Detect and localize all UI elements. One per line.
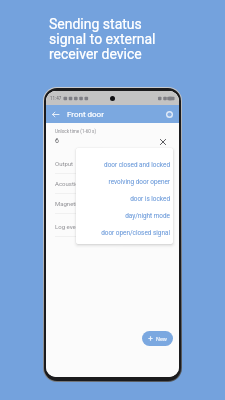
staticText: Sending status signal to external receiv… (49, 16, 156, 62)
button[interactable]: door is locked (76, 190, 170, 207)
staticText: Magnetic contact (55, 200, 102, 207)
button[interactable]: day/night mode (76, 207, 170, 224)
staticText: 11:47 (50, 96, 62, 101)
staticText: door closed and locked (104, 161, 170, 169)
staticText: Log event (55, 223, 81, 230)
staticText: day/night mode (125, 212, 170, 220)
button[interactable]: revolving door opener (76, 173, 170, 190)
button[interactable]: Help (164, 109, 175, 120)
button[interactable]: door open/closed signal (76, 224, 170, 241)
button[interactable]: Close (157, 136, 169, 148)
button[interactable]: Magnetic contact (55, 194, 171, 214)
staticText: Acoustic signal (55, 180, 96, 187)
staticText: Front door (67, 110, 104, 119)
button[interactable]: Back (50, 109, 61, 120)
button[interactable]: Log event (55, 217, 171, 237)
staticText: revolving door opener (108, 178, 170, 186)
button[interactable]: door closed and locked (76, 157, 170, 173)
button[interactable]: Output (55, 154, 171, 174)
staticText: 6 (55, 137, 59, 145)
staticText: door is locked (130, 195, 170, 203)
button[interactable]: New (142, 331, 173, 346)
staticText: Unlock time (1-60 s) (55, 129, 97, 134)
staticText: door open/closed signal (101, 229, 170, 237)
button[interactable]: Acoustic signal (55, 174, 171, 194)
staticText: New (156, 336, 167, 342)
staticText: Output (55, 160, 74, 167)
